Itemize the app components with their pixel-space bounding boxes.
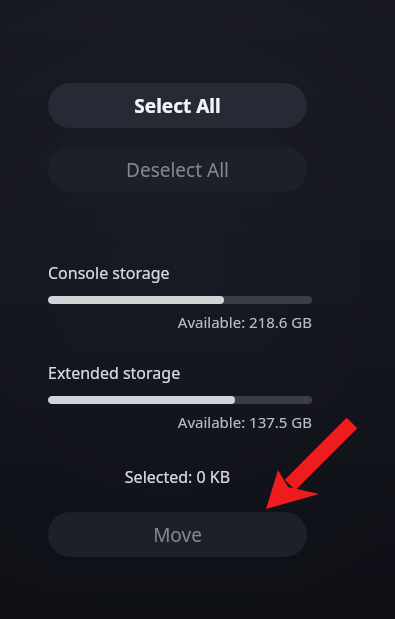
- staticText: Select All: [134, 93, 221, 119]
- staticText: Console storage: [48, 262, 170, 284]
- staticText: Move: [153, 522, 202, 548]
- staticText: Extended storage: [48, 362, 181, 384]
- staticText: Available: 218.6 GB: [48, 312, 312, 332]
- staticText: Deselect All: [126, 157, 229, 183]
- button[interactable]: Select All: [48, 83, 307, 128]
- button[interactable]: Deselect All: [48, 147, 307, 192]
- staticText: Selected: 0 KB: [48, 466, 307, 488]
- staticText: Available: 137.5 GB: [48, 412, 312, 432]
- button[interactable]: Move: [48, 512, 307, 557]
